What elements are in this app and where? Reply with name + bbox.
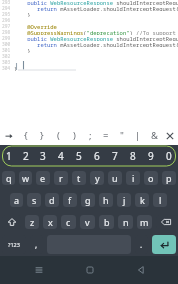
button[interactable]: Tab bbox=[0, 126, 17, 145]
staticText: u bbox=[112, 172, 118, 184]
button[interactable]: Back bbox=[129, 256, 153, 284]
button[interactable]: l bbox=[153, 193, 167, 207]
staticText: = bbox=[103, 129, 109, 142]
staticText: 295 bbox=[2, 11, 11, 17]
button[interactable]: 1 bbox=[0, 145, 17, 167]
staticText: x bbox=[48, 216, 53, 228]
button[interactable]: " bbox=[114, 126, 130, 145]
staticText: 0 bbox=[166, 149, 172, 163]
button[interactable]: j bbox=[117, 193, 131, 207]
staticText: ?123 bbox=[8, 241, 20, 248]
button[interactable]: Backspace bbox=[156, 215, 176, 229]
button[interactable]: ) bbox=[66, 126, 82, 145]
button[interactable]: q bbox=[2, 171, 15, 185]
button[interactable]: u bbox=[108, 171, 122, 185]
staticText: d bbox=[49, 194, 55, 206]
button[interactable]: 0 bbox=[160, 145, 178, 167]
staticText: 5 bbox=[76, 149, 82, 163]
staticText: p bbox=[166, 172, 172, 184]
button[interactable]: d bbox=[45, 193, 59, 207]
button[interactable]: 2 bbox=[17, 145, 34, 167]
staticText: 296 bbox=[2, 17, 11, 23]
staticText: 6 bbox=[94, 149, 100, 163]
staticText: f bbox=[68, 194, 72, 206]
staticText: k bbox=[140, 194, 145, 206]
staticText: & bbox=[151, 129, 158, 142]
button[interactable]: f bbox=[63, 193, 77, 207]
button[interactable]: p bbox=[162, 171, 176, 185]
staticText: @SuppressWarnings("deprecation") //To su… bbox=[14, 29, 178, 35]
button[interactable]: 3 bbox=[34, 145, 52, 167]
staticText: ; bbox=[89, 129, 92, 142]
button[interactable]: Recent apps bbox=[26, 256, 51, 284]
button[interactable]: } bbox=[34, 126, 50, 145]
staticText: 7 bbox=[112, 149, 118, 163]
staticText: y bbox=[95, 172, 100, 184]
button[interactable]: o bbox=[144, 171, 158, 185]
button[interactable]: k bbox=[135, 193, 149, 207]
staticText: 294 bbox=[2, 5, 11, 11]
staticText: 298 bbox=[2, 29, 11, 35]
button[interactable]: 6 bbox=[88, 145, 106, 167]
button[interactable]: g bbox=[81, 193, 95, 207]
button[interactable]: c bbox=[61, 215, 76, 229]
button[interactable]: x bbox=[43, 215, 57, 229]
staticText: t bbox=[77, 172, 81, 184]
staticText: q bbox=[6, 172, 12, 184]
button[interactable]: 8 bbox=[124, 145, 142, 167]
staticText: 9 bbox=[148, 149, 154, 163]
button[interactable]: y bbox=[90, 171, 104, 185]
staticText: c bbox=[66, 216, 71, 228]
button[interactable]: h bbox=[99, 193, 113, 207]
staticText: 3 bbox=[40, 149, 46, 163]
button[interactable]: Close bbox=[162, 126, 178, 145]
button[interactable]: Home bbox=[78, 256, 102, 284]
button[interactable]: 9 bbox=[142, 145, 160, 167]
button[interactable]: z bbox=[25, 215, 39, 229]
button[interactable]: r bbox=[54, 171, 68, 185]
button[interactable]: & bbox=[146, 126, 162, 145]
button[interactable]: m bbox=[137, 215, 152, 229]
button[interactable]: i bbox=[126, 171, 140, 185]
button[interactable]: 4 bbox=[52, 145, 70, 167]
staticText: return mAssetLoader.shouldInterceptReque… bbox=[14, 41, 178, 47]
staticText: w bbox=[22, 172, 30, 184]
button[interactable]: 5 bbox=[70, 145, 88, 167]
staticText: { bbox=[24, 129, 28, 142]
button[interactable]: . bbox=[135, 235, 148, 254]
button[interactable]: 7 bbox=[106, 145, 124, 167]
staticText: v bbox=[85, 216, 90, 228]
staticText: r bbox=[59, 172, 63, 184]
button[interactable]: { bbox=[17, 126, 34, 145]
staticText: s bbox=[32, 194, 37, 206]
staticText: 2 bbox=[23, 149, 29, 163]
button[interactable]: = bbox=[98, 126, 114, 145]
button[interactable]: | bbox=[130, 126, 146, 145]
staticText: } bbox=[40, 129, 44, 142]
staticText: 301 bbox=[2, 47, 11, 53]
button[interactable]: n bbox=[118, 215, 133, 229]
staticText: 299 bbox=[2, 35, 11, 41]
staticText: | bbox=[135, 129, 141, 142]
button[interactable]: ?123 bbox=[2, 235, 26, 254]
staticText: @Override bbox=[14, 23, 57, 29]
staticText: 8 bbox=[130, 149, 136, 163]
button[interactable]: s bbox=[27, 193, 41, 207]
button[interactable]: ; bbox=[82, 126, 98, 145]
button[interactable]: Enter bbox=[152, 235, 176, 254]
button[interactable]: Shift bbox=[2, 215, 21, 229]
button[interactable]: ( bbox=[50, 126, 66, 145]
button[interactable]: w bbox=[19, 171, 32, 185]
staticText: 304 bbox=[2, 65, 11, 71]
button[interactable]: a bbox=[10, 193, 23, 207]
staticText: 300 bbox=[2, 41, 11, 47]
staticText: ) bbox=[73, 129, 76, 142]
button[interactable]: e bbox=[36, 171, 50, 185]
button[interactable]: t bbox=[72, 171, 86, 185]
button[interactable]: v bbox=[80, 215, 95, 229]
button[interactable]: b bbox=[99, 215, 114, 229]
staticText: } bbox=[14, 11, 31, 17]
staticText: e bbox=[40, 172, 46, 184]
button[interactable]: , bbox=[30, 235, 43, 254]
